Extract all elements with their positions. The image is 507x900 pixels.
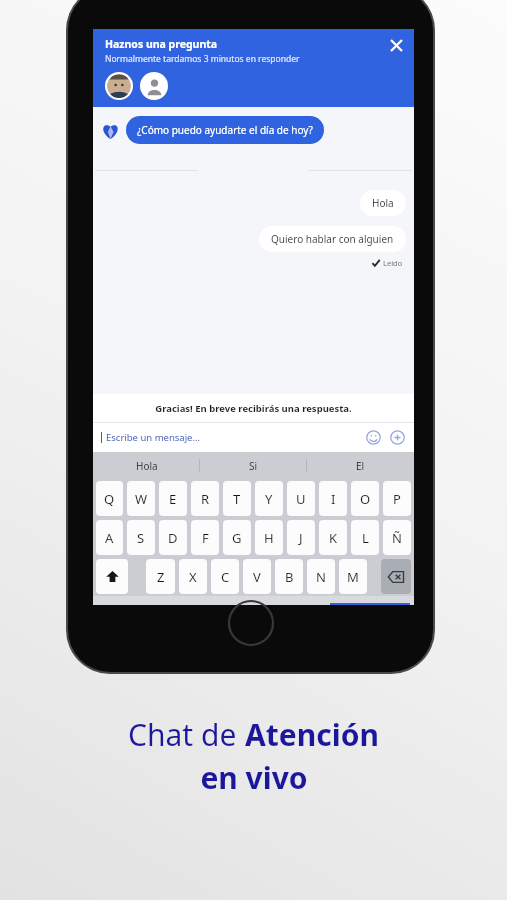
button[interactable]: Z [146, 559, 175, 594]
button[interactable]: E [159, 481, 187, 516]
button[interactable]: P [383, 481, 411, 516]
staticText: Q [104, 490, 115, 508]
button[interactable]: O [351, 481, 379, 516]
staticText: R [201, 490, 210, 508]
staticText: O [360, 490, 371, 508]
staticText: J [299, 529, 303, 547]
staticText: Escribe un mensaje... [106, 431, 201, 444]
button[interactable]: I [319, 481, 347, 516]
staticText: Z [157, 568, 165, 586]
button[interactable]: F [191, 520, 219, 555]
staticText: Hola [372, 196, 394, 210]
staticText: C [221, 568, 230, 586]
button[interactable]: Escribe un mensaje... [101, 431, 364, 444]
staticText: B [285, 568, 294, 586]
button[interactable]: T [223, 481, 251, 516]
staticText: V [253, 568, 261, 586]
staticText: P [393, 490, 401, 508]
staticText: ¿Cómo puedo ayudarte el día de hoy? [137, 123, 313, 137]
staticText: Chat de [128, 714, 245, 755]
button[interactable]: M [339, 559, 367, 594]
staticText: Gracias! En breve recibirás una respuest… [155, 402, 352, 415]
button[interactable]: K [319, 520, 347, 555]
staticText: L [362, 529, 369, 547]
button[interactable]: G [223, 520, 251, 555]
button[interactable]: J [287, 520, 315, 555]
staticText: S [137, 529, 145, 547]
staticText: H [264, 529, 274, 547]
staticText: F [202, 529, 209, 547]
button[interactable]: Hola [93, 452, 200, 479]
staticText: G [232, 529, 242, 547]
staticText: I [331, 490, 336, 508]
staticText: A [105, 529, 114, 547]
button[interactable]: Emoji [364, 428, 382, 446]
button[interactable]: Si [200, 452, 307, 479]
button[interactable]: Quiero hablar con alguien [259, 226, 406, 252]
button[interactable]: X [179, 559, 207, 594]
staticText: D [168, 529, 178, 547]
button[interactable]: Hola [360, 190, 406, 216]
button[interactable]: S [127, 520, 155, 555]
button[interactable]: N [307, 559, 335, 594]
button[interactable]: U [287, 481, 315, 516]
button[interactable]: H [255, 520, 283, 555]
button[interactable]: Mayúsculas [96, 559, 128, 594]
staticText: en vivo [200, 757, 308, 798]
button[interactable]: ¿Cómo puedo ayudarte el día de hoy? [126, 116, 324, 144]
button[interactable]: V [243, 559, 271, 594]
staticText: Y [265, 490, 273, 508]
staticText: K [329, 529, 338, 547]
button[interactable]: A [96, 520, 123, 555]
button[interactable]: W [127, 481, 155, 516]
staticText: Atención [245, 714, 379, 755]
staticText: El [356, 459, 365, 473]
staticText: Hola [136, 459, 158, 473]
button[interactable]: Cerrar [386, 35, 406, 55]
staticText: Quiero hablar con alguien [271, 232, 394, 246]
button[interactable]: Q [96, 481, 123, 516]
staticText: Leído [383, 258, 403, 268]
button[interactable]: Borrar [381, 559, 411, 594]
staticText: X [189, 568, 197, 586]
button[interactable]: B [275, 559, 303, 594]
staticText: W [135, 490, 148, 508]
button[interactable]: Y [255, 481, 283, 516]
button[interactable]: Ñ [383, 520, 411, 555]
button[interactable]: R [191, 481, 219, 516]
button[interactable]: Adjuntar [388, 428, 406, 446]
button[interactable]: L [351, 520, 379, 555]
staticText: Ñ [392, 529, 402, 547]
staticText: Si [249, 459, 258, 473]
staticText: Haznos una pregunta [105, 37, 218, 51]
button[interactable]: D [159, 520, 187, 555]
staticText: Normalmente tardamos 3 minutos en respon… [105, 53, 300, 65]
staticText: U [296, 490, 306, 508]
button[interactable]: El [307, 452, 414, 479]
staticText: M [347, 568, 359, 586]
staticText: E [169, 490, 177, 508]
staticText: T [233, 490, 241, 508]
staticText: N [316, 568, 326, 586]
button[interactable]: C [211, 559, 239, 594]
